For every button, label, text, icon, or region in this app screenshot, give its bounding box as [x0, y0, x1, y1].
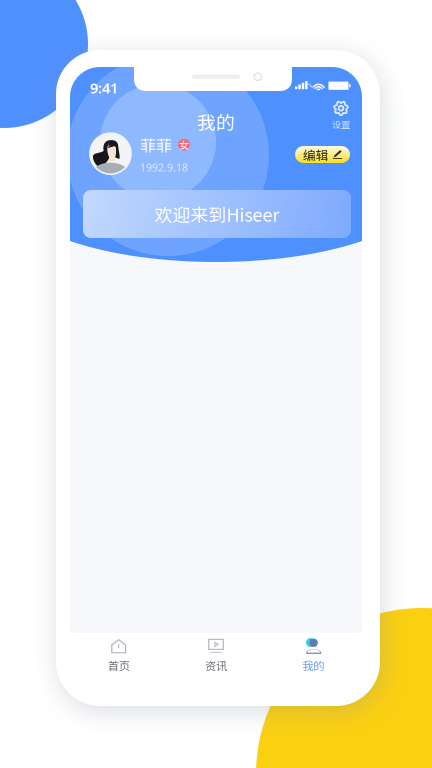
- button[interactable]: 菲菲: [90, 133, 240, 174]
- staticText: 菲菲: [140, 133, 172, 156]
- button[interactable]: 编辑: [295, 146, 350, 163]
- staticText: 9:41: [90, 78, 118, 97]
- button[interactable]: 欢迎来到Hiseer: [83, 190, 351, 238]
- staticText: 1992.9.18: [140, 160, 188, 174]
- button[interactable]: 资讯: [167, 633, 265, 679]
- button[interactable]: 首页: [70, 633, 167, 679]
- staticText: 首页: [108, 657, 130, 673]
- staticText: 编辑: [303, 145, 329, 164]
- button[interactable]: 设置: [324, 102, 358, 129]
- staticText: 欢迎来到Hiseer: [154, 201, 279, 227]
- staticText: 女: [179, 137, 189, 152]
- staticText: 我的: [302, 657, 324, 673]
- button[interactable]: 我的: [265, 633, 362, 679]
- staticText: 设置: [332, 117, 350, 131]
- staticText: 我的: [197, 108, 235, 135]
- staticText: 资讯: [205, 657, 227, 673]
